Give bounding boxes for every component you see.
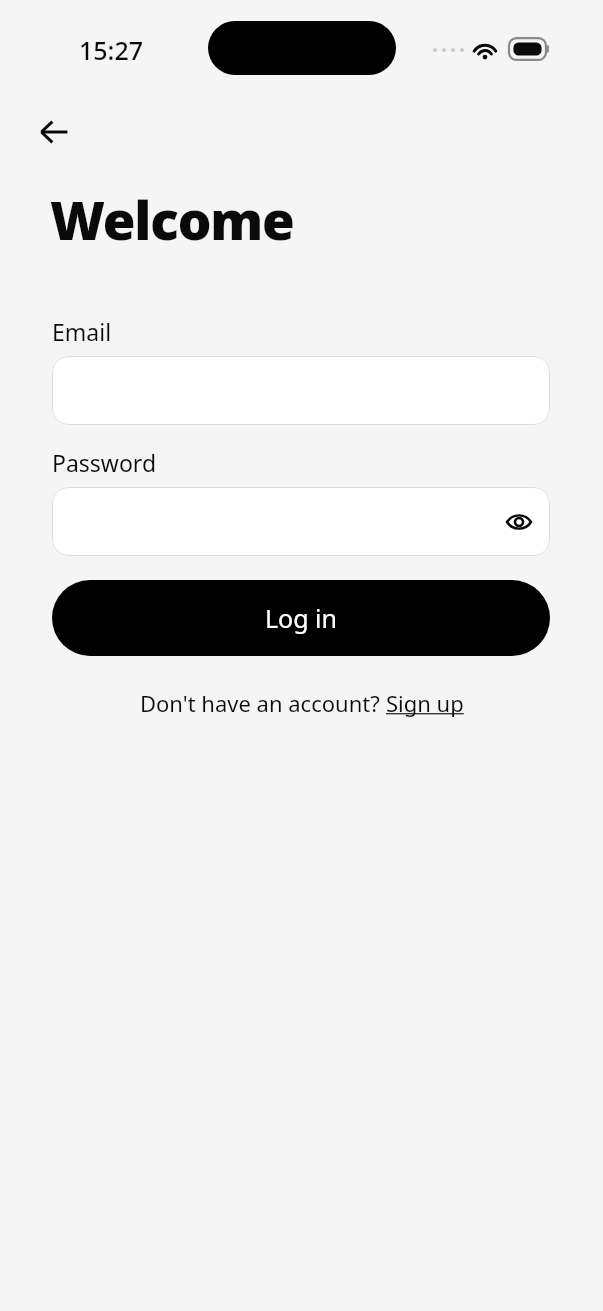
staticText: Sign up [386, 688, 464, 718]
staticText: Log in [265, 601, 338, 635]
staticText: Password [52, 447, 157, 478]
button[interactable]: Email field [52, 356, 550, 425]
button[interactable]: Log in [52, 580, 550, 656]
button[interactable]: Sign up [386, 688, 464, 718]
button[interactable]: Back [30, 108, 78, 156]
staticText: Welcome [50, 183, 294, 255]
staticText: Email [52, 316, 112, 347]
button[interactable]: Show password [496, 499, 542, 545]
staticText: Don't have an account? [140, 688, 386, 718]
button[interactable]: Password field [52, 487, 550, 556]
staticText: 15:27 [79, 33, 144, 67]
